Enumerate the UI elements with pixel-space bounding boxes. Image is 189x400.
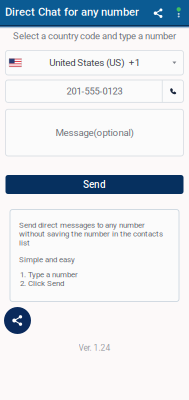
button[interactable]: Share app xyxy=(4,307,31,334)
button[interactable]: More options xyxy=(172,0,186,24)
staticText: United States (US) xyxy=(49,57,124,68)
staticText: Send xyxy=(83,179,106,190)
button[interactable]: Send xyxy=(5,175,183,194)
staticText: +1 xyxy=(129,57,140,68)
staticText: Ver. 1.24 xyxy=(78,343,110,353)
staticText: Send direct messages to any number witho… xyxy=(19,220,163,247)
staticText: Simple and easy xyxy=(19,255,75,264)
button[interactable]: Choose from contacts xyxy=(163,80,183,102)
staticText: 1. Type a number 2. Click Send xyxy=(20,270,78,288)
staticText: Message(optional) xyxy=(55,127,133,138)
staticText: Select a country code and type a number xyxy=(13,30,176,42)
staticText: 201-555-0123 xyxy=(66,86,122,97)
staticText: Direct Chat for any number xyxy=(5,5,139,18)
button[interactable]: United States (US) xyxy=(5,50,183,75)
button[interactable]: Share xyxy=(149,1,167,25)
